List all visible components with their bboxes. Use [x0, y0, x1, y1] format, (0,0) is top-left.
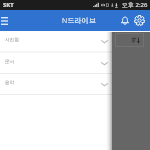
staticText: 음악	[5, 80, 15, 86]
button[interactable]: 사진첩	[0, 31, 150, 52]
button[interactable]: Settings	[132, 10, 147, 31]
button[interactable]: 음악	[0, 74, 150, 94]
staticText: N드라이브	[62, 15, 96, 25]
staticText: 문서	[5, 59, 15, 65]
button[interactable]: Sort	[115, 33, 144, 47]
button[interactable]: Menu	[0, 10, 15, 31]
staticText: 사진첩	[5, 37, 19, 43]
button[interactable]: Notifications	[117, 10, 132, 31]
button[interactable]: 문서	[0, 53, 150, 74]
staticText: SKT	[3, 1, 14, 9]
staticText: 오후 2:26	[122, 1, 148, 9]
